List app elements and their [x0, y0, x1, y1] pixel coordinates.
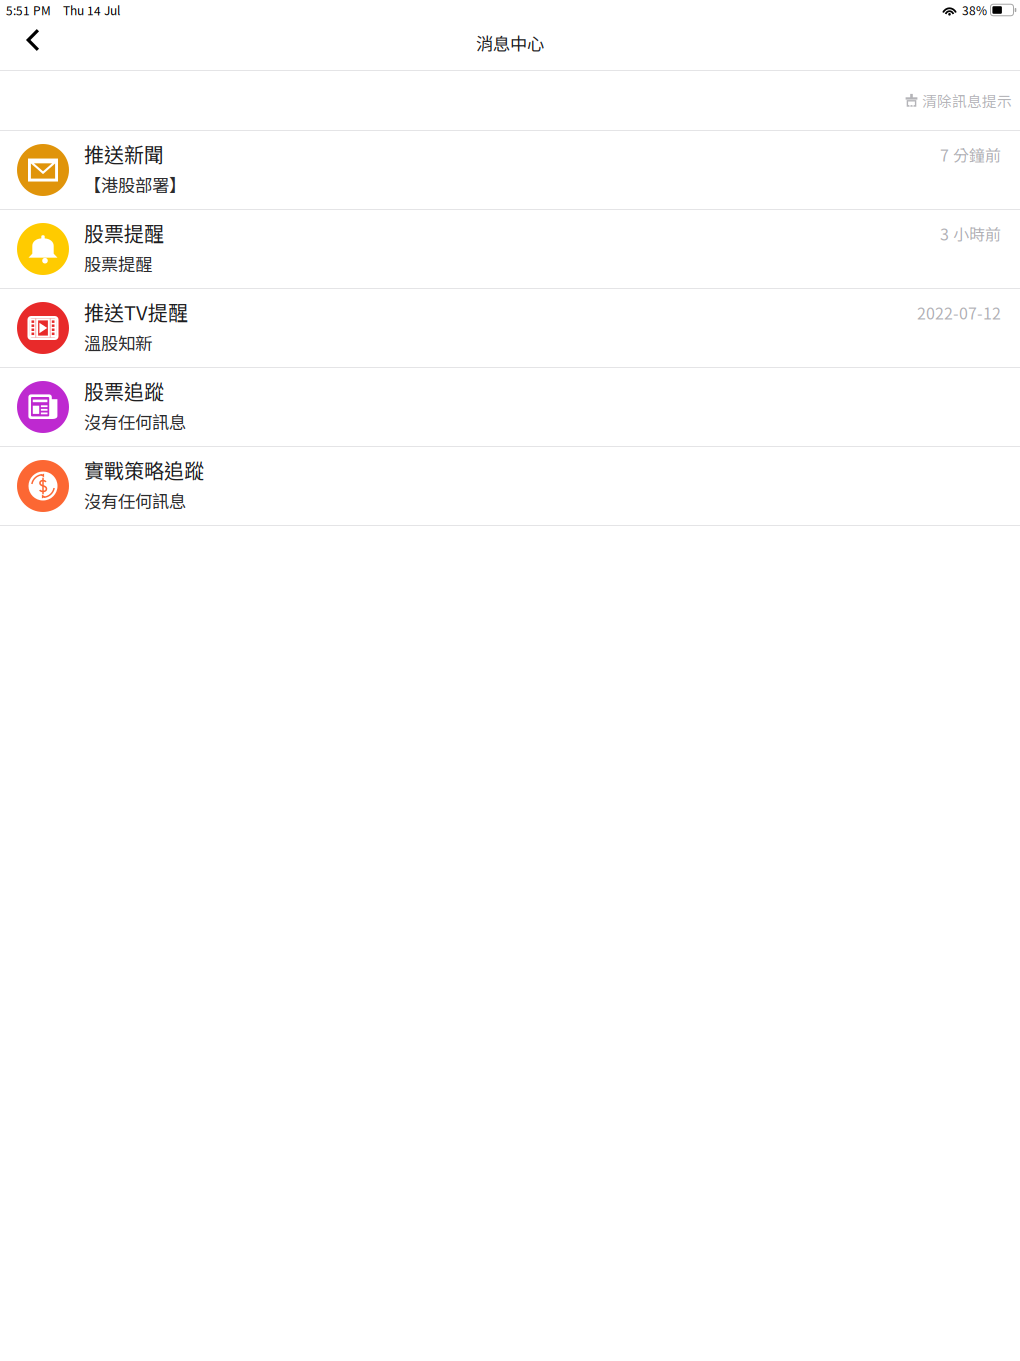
button[interactable]: Back — [11, 18, 55, 62]
staticText: 溫股知新 — [84, 330, 152, 355]
staticText: 3 小時前 — [940, 222, 1001, 245]
button[interactable]: 推送新聞 — [0, 131, 1020, 210]
staticText: 沒有任何訊息 — [84, 409, 186, 434]
staticText: 7 分鐘前 — [940, 143, 1001, 166]
staticText: 股票提醒 — [84, 218, 164, 247]
staticText: 清除訊息提示 — [922, 90, 1012, 111]
button[interactable]: 股票追蹤 — [0, 368, 1020, 447]
staticText: 38% — [962, 1, 987, 19]
staticText: 實戰策略追蹤 — [84, 455, 204, 484]
button[interactable]: 股票提醒 — [0, 210, 1020, 289]
staticText: 沒有任何訊息 — [84, 488, 186, 513]
staticText: 推送新聞 — [84, 139, 164, 168]
staticText: 【港股部署】 — [84, 172, 186, 197]
staticText: Thu 14 Jul — [63, 1, 120, 19]
staticText: 5:51 PM — [6, 1, 51, 19]
button[interactable]: 清除訊息提示 — [897, 78, 1020, 123]
staticText: 推送TV提醒 — [84, 297, 188, 326]
staticText: 消息中心 — [476, 30, 544, 56]
staticText: 股票追蹤 — [84, 376, 164, 405]
button[interactable]: 實戰策略追蹤 — [0, 447, 1020, 526]
staticText: 股票提醒 — [84, 251, 152, 276]
button[interactable]: 推送TV提醒 — [0, 289, 1020, 368]
staticText: 2022-07-12 — [917, 301, 1001, 324]
